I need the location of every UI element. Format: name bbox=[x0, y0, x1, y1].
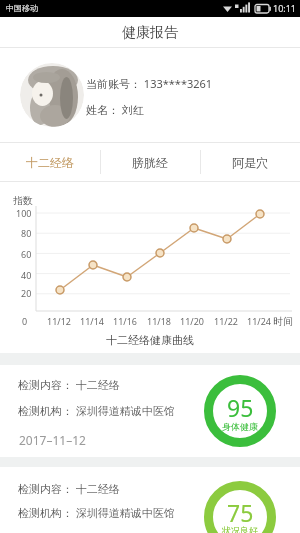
button[interactable] bbox=[200, 143, 300, 181]
button[interactable] bbox=[100, 143, 200, 181]
staticText: 0 bbox=[22, 315, 28, 327]
staticText: 中国移动 bbox=[6, 3, 38, 13]
staticText: 健康报告 bbox=[122, 24, 178, 42]
staticText: 状况良好 bbox=[222, 525, 258, 533]
staticText: 检测机构： 深圳得道精诚中医馆 bbox=[18, 403, 175, 418]
staticText: 10:11 bbox=[273, 2, 297, 14]
staticText: 11/12 bbox=[47, 315, 71, 327]
staticText: 40 bbox=[21, 269, 32, 281]
staticText: 100 bbox=[16, 207, 32, 219]
staticText: 80 bbox=[21, 227, 32, 239]
button[interactable] bbox=[0, 467, 300, 533]
staticText: 75 bbox=[227, 497, 254, 528]
staticText: 当前账号： 133****3261 bbox=[86, 76, 213, 91]
button[interactable] bbox=[20, 63, 84, 127]
staticText: 时间 bbox=[273, 315, 293, 328]
staticText: 2017–11–12 bbox=[19, 432, 86, 448]
staticText: 11/24 bbox=[247, 315, 271, 327]
button[interactable] bbox=[0, 143, 100, 181]
staticText: 指数 bbox=[13, 194, 33, 207]
staticText: 姓名： 刘红 bbox=[86, 102, 144, 117]
staticText: 十二经络 bbox=[26, 155, 74, 170]
staticText: 95 bbox=[227, 392, 254, 423]
staticText: 11/14 bbox=[80, 315, 104, 327]
staticText: 11/22 bbox=[214, 315, 238, 327]
staticText: 十二经络健康曲线 bbox=[106, 333, 194, 347]
staticText: 60 bbox=[21, 248, 32, 260]
staticText: 20 bbox=[21, 287, 32, 299]
staticText: 11/18 bbox=[147, 315, 171, 327]
staticText: 检测机构： 深圳得道精诚中医馆 bbox=[18, 505, 175, 520]
staticText: 检测内容： 十二经络 bbox=[18, 481, 120, 496]
staticText: 膀胱经 bbox=[132, 155, 168, 170]
staticText: 11/20 bbox=[180, 315, 204, 327]
staticText: 身体健康 bbox=[222, 421, 258, 432]
button[interactable] bbox=[0, 365, 300, 457]
staticText: 11/16 bbox=[113, 315, 137, 327]
staticText: 检测内容： 十二经络 bbox=[18, 377, 120, 392]
staticText: 阿是穴 bbox=[232, 155, 268, 170]
